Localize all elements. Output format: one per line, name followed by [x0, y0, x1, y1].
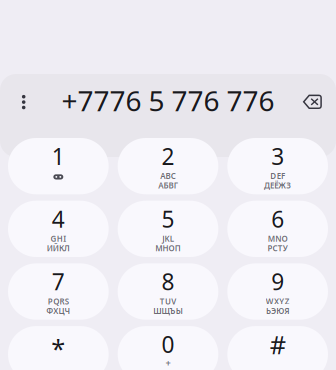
button[interactable]: 7 [8, 263, 109, 320]
staticText: РСТУ [267, 243, 288, 253]
button[interactable]: 9 [227, 263, 328, 320]
staticText: 2 [161, 141, 174, 171]
staticText: TUV [160, 296, 176, 307]
button[interactable]: 1 [8, 138, 109, 194]
staticText: 8 [161, 266, 174, 297]
staticText: ФХЦЧ [46, 305, 70, 316]
button[interactable]: 2 [118, 138, 218, 194]
staticText: PQRS [48, 296, 69, 307]
staticText: МНОП [155, 243, 181, 253]
staticText: ABC [160, 171, 176, 181]
staticText: ШЩЪЫ [153, 305, 183, 316]
staticText: + [165, 357, 170, 369]
button[interactable]: 8 [118, 263, 218, 320]
button[interactable]: Delete [293, 82, 331, 122]
button[interactable]: * [8, 326, 109, 370]
staticText: ДЕЁЖЗ [264, 180, 291, 191]
staticText: GHI [50, 233, 66, 244]
staticText: # [270, 328, 286, 361]
staticText: 5 [161, 204, 174, 234]
staticText: MNO [268, 233, 287, 244]
button[interactable]: 5 [118, 201, 218, 257]
staticText: JKL [162, 233, 174, 244]
button[interactable]: 4 [8, 201, 109, 257]
button[interactable]: 6 [227, 201, 328, 257]
staticText: WXYZ [266, 296, 290, 307]
staticText: 6 [271, 204, 284, 234]
staticText: ЬЭЮЯ [266, 305, 289, 316]
staticText: 7 [52, 266, 65, 297]
staticText: 3 [271, 141, 284, 171]
staticText: ИЙКЛ [47, 243, 70, 253]
staticText: 1 [52, 141, 65, 171]
staticText: * [51, 331, 65, 365]
button[interactable]: 3 [227, 138, 328, 194]
staticText: 4 [52, 204, 65, 234]
staticText: DEF [270, 171, 285, 181]
button[interactable]: More options [7, 82, 41, 122]
button[interactable]: 0 [118, 326, 218, 370]
staticText: 9 [271, 266, 284, 297]
button[interactable]: # [227, 326, 328, 370]
staticText: 0 [161, 329, 174, 359]
staticText: +7776 5 776 776 [61, 82, 274, 119]
staticText: АБВГ [158, 180, 178, 191]
